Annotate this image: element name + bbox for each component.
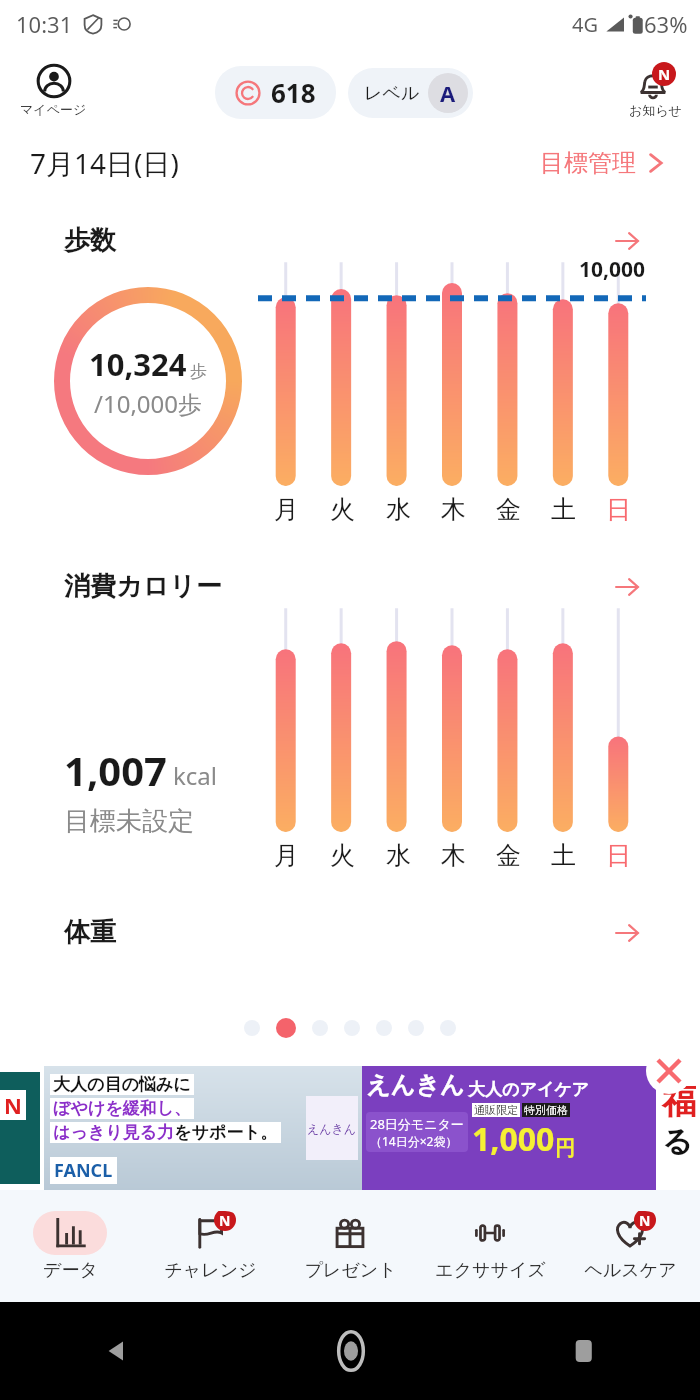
staticText: 618 xyxy=(271,75,316,110)
staticText: 1,007 xyxy=(64,743,167,797)
staticText: ヘルスケア xyxy=(584,1259,677,1282)
staticText: 63% xyxy=(644,9,688,39)
button[interactable]: エクササイズ xyxy=(420,1190,560,1302)
staticText: （14日分×2袋） xyxy=(370,1133,458,1149)
staticText: 火 xyxy=(330,840,355,871)
staticText: N xyxy=(639,1211,651,1230)
staticText: お知らせ xyxy=(629,102,682,118)
staticText: 円 xyxy=(555,1136,575,1161)
staticText: る xyxy=(662,1123,693,1161)
button[interactable]: レベル xyxy=(348,68,473,118)
button[interactable]: 目標管理 xyxy=(536,144,670,182)
staticText: 水 xyxy=(386,494,411,525)
staticText: 土 xyxy=(551,840,576,871)
staticText: 10,324 xyxy=(89,343,187,385)
staticText: 金 xyxy=(496,494,521,525)
button[interactable]: 消費カロリー xyxy=(38,548,662,878)
staticText: はっきり見る力 xyxy=(53,1122,174,1143)
staticText: 特別価格 xyxy=(524,1103,568,1117)
staticText: 福 xyxy=(662,1080,696,1123)
staticText: 歩数 xyxy=(64,224,116,257)
staticText: えんきん xyxy=(307,1121,357,1136)
staticText: 10,000 xyxy=(579,255,646,284)
button[interactable]: 歩数 xyxy=(38,202,662,532)
button[interactable]: 体重 xyxy=(38,894,662,1014)
staticText: 日 xyxy=(606,494,631,525)
staticText: N xyxy=(658,64,671,84)
button[interactable]: 618 xyxy=(215,66,336,119)
staticText: 10:31 xyxy=(16,9,73,39)
staticText: 火 xyxy=(330,494,355,525)
button[interactable]: N xyxy=(560,1190,700,1302)
staticText: 土 xyxy=(551,494,576,525)
staticText: データ xyxy=(43,1259,98,1282)
button[interactable]: 広告を閉じる xyxy=(646,1048,692,1094)
staticText: 歩 xyxy=(190,361,207,382)
staticText: kcal xyxy=(173,759,217,792)
button[interactable]: 大人の目の悩みに xyxy=(44,1066,656,1190)
staticText: FANCL xyxy=(54,1158,113,1183)
staticText: 水 xyxy=(386,840,411,871)
staticText: 日 xyxy=(606,840,631,871)
button[interactable]: データ xyxy=(0,1190,140,1302)
staticText: えんきん xyxy=(366,1070,465,1100)
staticText: 28日分モニター xyxy=(370,1115,464,1133)
staticText: チャレンジ xyxy=(164,1259,257,1282)
staticText: /10,000歩 xyxy=(94,387,202,420)
other: 戻る xyxy=(102,1336,132,1366)
staticText: 金 xyxy=(496,840,521,871)
staticText: 大人のアイケア xyxy=(468,1079,589,1100)
button[interactable]: マイページ xyxy=(14,61,93,119)
staticText: エクササイズ xyxy=(435,1259,546,1282)
button[interactable]: プレゼント xyxy=(280,1190,420,1302)
other: 詳細へ xyxy=(614,228,640,254)
staticText: 4G xyxy=(572,11,598,38)
staticText: 7月14日(日) xyxy=(30,144,179,182)
staticText: プレゼント xyxy=(304,1259,397,1282)
staticText: 目標管理 xyxy=(540,148,636,178)
button[interactable]: N xyxy=(625,62,686,118)
staticText: 通販限定 xyxy=(474,1103,518,1117)
staticText: 1,000 xyxy=(472,1117,555,1161)
other: ホーム xyxy=(329,1329,373,1373)
button[interactable]: N xyxy=(140,1190,280,1302)
staticText: 大人の目の悩みに xyxy=(53,1074,191,1095)
staticText: をサポート。 xyxy=(174,1122,278,1143)
staticText: レベル xyxy=(364,82,420,105)
staticText: マイページ xyxy=(20,101,87,117)
staticText: 木 xyxy=(441,840,466,871)
staticText: 体重 xyxy=(64,916,116,949)
staticText: N xyxy=(219,1211,231,1230)
staticText: A xyxy=(440,78,456,108)
staticText: 月 xyxy=(274,494,299,525)
staticText: 木 xyxy=(441,494,466,525)
staticText: 月 xyxy=(274,840,299,871)
staticText: N xyxy=(4,1090,22,1120)
other: 詳細へ xyxy=(614,574,640,600)
staticText: ぼやけを緩和し、 xyxy=(53,1098,191,1119)
other: 最近のアプリ xyxy=(571,1338,597,1364)
staticText: 目標未設定 xyxy=(64,805,194,838)
staticText: 消費カロリー xyxy=(64,570,222,603)
